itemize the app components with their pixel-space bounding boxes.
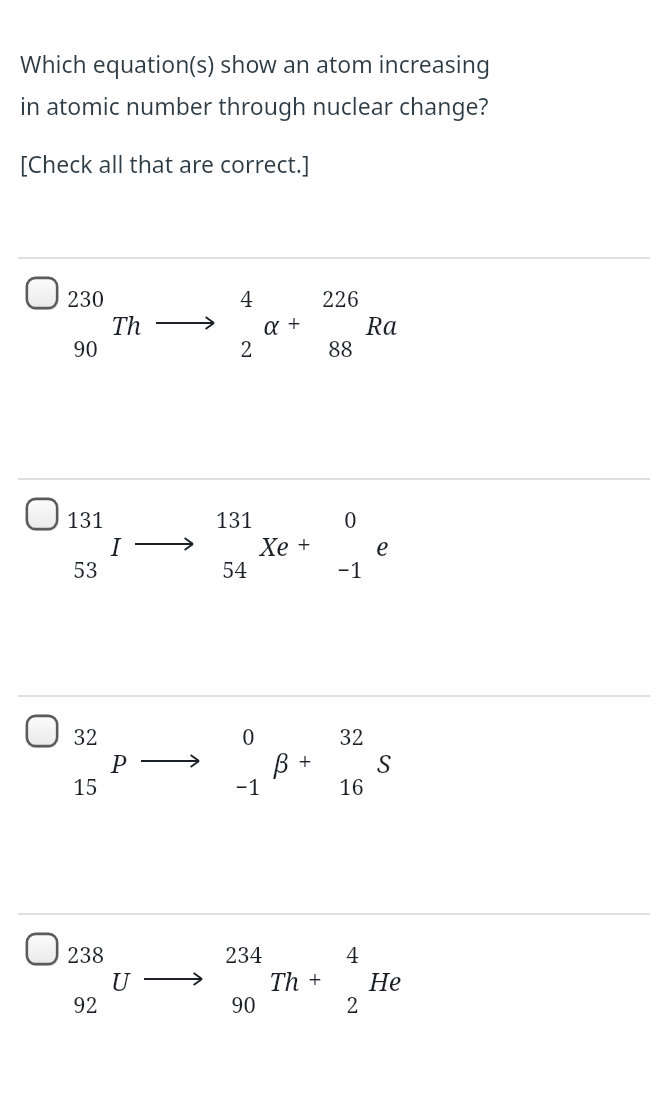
staticText: 92 — [73, 989, 98, 1019]
button[interactable]: Answer option checkbox — [0, 915, 666, 1099]
staticText: α — [263, 308, 279, 342]
button[interactable]: Answer option checkbox — [0, 480, 666, 695]
staticText: 90 — [231, 989, 256, 1019]
staticText: S — [377, 746, 391, 780]
staticText: 4 — [240, 283, 253, 313]
staticText: 0 — [242, 721, 255, 751]
staticText: 238 — [67, 939, 104, 969]
staticText: 90 — [73, 333, 98, 363]
staticText: 230 — [67, 283, 104, 313]
staticText: Which equation(s) show an atom increasin… — [20, 48, 491, 122]
staticText: + — [287, 306, 301, 340]
staticText: I — [111, 529, 121, 563]
button[interactable]: Answer option checkbox — [25, 714, 59, 748]
staticText: Th — [269, 964, 300, 998]
staticText: Xe — [260, 529, 289, 563]
staticText: −1 — [235, 771, 261, 801]
staticText: 226 — [322, 283, 359, 313]
staticText: 54 — [222, 554, 247, 584]
staticText: 16 — [339, 771, 364, 801]
staticText: 88 — [328, 333, 353, 363]
staticText: + — [308, 962, 322, 996]
button[interactable]: Answer option checkbox — [25, 276, 59, 310]
button[interactable]: Answer option checkbox — [25, 497, 59, 531]
staticText: 131 — [216, 504, 253, 534]
staticText: 131 — [67, 504, 104, 534]
button[interactable]: Answer option checkbox — [25, 932, 59, 966]
staticText: 0 — [344, 504, 357, 534]
staticText: [Check all that are correct.] — [20, 148, 310, 179]
staticText: 32 — [339, 721, 364, 751]
staticText: + — [297, 527, 311, 561]
staticText: 53 — [73, 554, 98, 584]
staticText: −1 — [337, 554, 363, 584]
staticText: Th — [111, 308, 142, 342]
staticText: 2 — [240, 333, 253, 363]
button[interactable]: Answer option checkbox — [0, 259, 666, 478]
staticText: P — [111, 746, 127, 780]
button[interactable]: Answer option checkbox — [0, 697, 666, 913]
staticText: 4 — [346, 939, 359, 969]
staticText: 234 — [225, 939, 262, 969]
staticText: Ra — [366, 308, 398, 342]
staticText: He — [369, 964, 402, 998]
staticText: 32 — [73, 721, 98, 751]
staticText: β — [274, 746, 290, 780]
staticText: e — [376, 529, 389, 563]
staticText: + — [298, 744, 312, 778]
staticText: 2 — [346, 989, 359, 1019]
staticText: U — [111, 964, 130, 998]
staticText: 15 — [73, 771, 98, 801]
